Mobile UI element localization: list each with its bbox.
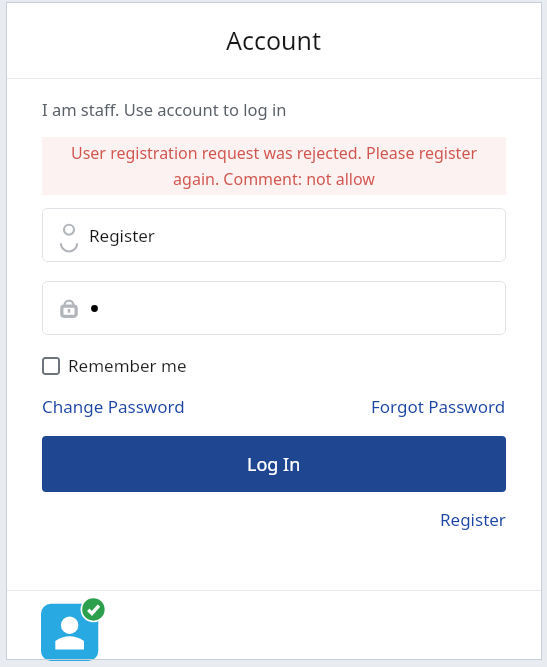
staticText: Log In	[247, 452, 301, 477]
button[interactable]: Verified account avatar	[41, 597, 105, 660]
button[interactable]: Forgot Password	[371, 392, 506, 421]
button[interactable]: Remember me	[40, 351, 191, 380]
staticText: I am staff. Use account to log in	[42, 98, 287, 120]
staticText: Remember me	[68, 354, 187, 377]
staticText: Register	[440, 508, 506, 531]
staticText: Change Password	[42, 395, 185, 418]
button[interactable]: Username field	[42, 208, 506, 262]
staticText: User registration request was rejected. …	[66, 142, 482, 190]
button[interactable]: Password field	[42, 281, 506, 335]
staticText: Register	[89, 224, 155, 247]
button[interactable]: Log In	[42, 436, 506, 492]
button[interactable]: Register	[440, 505, 506, 534]
staticText: Forgot Password	[371, 395, 506, 418]
staticText: Account	[226, 23, 322, 57]
button[interactable]: Change Password	[42, 392, 185, 421]
